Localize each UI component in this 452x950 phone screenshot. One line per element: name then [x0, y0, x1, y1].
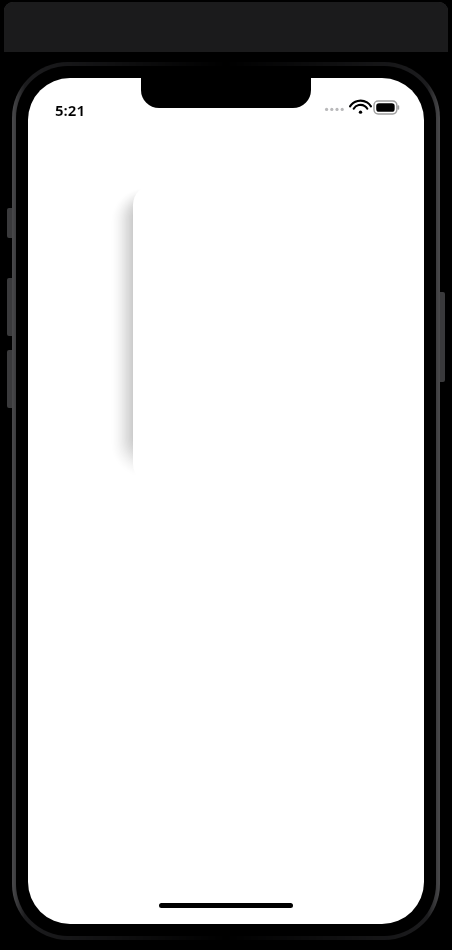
staticText: 5:21: [55, 100, 85, 120]
